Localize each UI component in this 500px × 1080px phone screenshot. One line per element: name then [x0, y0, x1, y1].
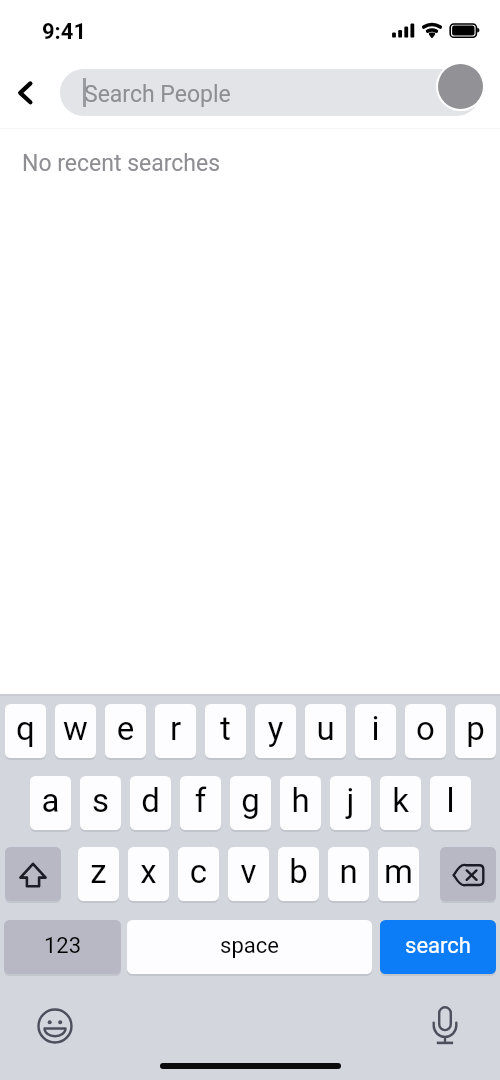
staticText: search — [380, 933, 496, 959]
staticText: No recent searches — [22, 150, 221, 177]
button[interactable]: i — [355, 704, 396, 758]
staticText: Search People — [84, 81, 231, 108]
button[interactable]: space — [127, 920, 372, 974]
button[interactable]: g — [230, 776, 271, 830]
button[interactable]: p — [455, 704, 496, 758]
button[interactable]: Back — [0, 70, 46, 116]
button[interactable]: y — [255, 704, 296, 758]
button[interactable]: n — [328, 847, 369, 901]
button[interactable]: Dictation — [423, 994, 475, 1046]
staticText: x — [128, 852, 169, 891]
staticText: f — [180, 781, 221, 820]
button[interactable]: a — [30, 776, 71, 830]
staticText: o — [405, 709, 446, 748]
button[interactable]: e — [105, 704, 146, 758]
staticText: n — [328, 852, 369, 891]
button[interactable]: x — [128, 847, 169, 901]
staticText: h — [280, 781, 321, 820]
staticText: t — [205, 709, 246, 748]
button[interactable]: u — [305, 704, 346, 758]
button[interactable]: m — [378, 847, 419, 901]
staticText: u — [305, 709, 346, 748]
button[interactable]: k — [380, 776, 421, 830]
button[interactable]: 123 — [4, 920, 121, 974]
button[interactable]: c — [178, 847, 219, 901]
button[interactable]: h — [280, 776, 321, 830]
button[interactable]: Shift — [5, 847, 61, 901]
staticText: g — [230, 781, 271, 820]
button[interactable]: l — [430, 776, 471, 830]
button[interactable]: Profile — [438, 64, 483, 109]
staticText: p — [455, 709, 496, 748]
button[interactable]: Delete — [440, 847, 496, 901]
staticText: d — [130, 781, 171, 820]
button[interactable]: Search People — [60, 69, 480, 116]
staticText: m — [378, 852, 419, 891]
staticText: s — [80, 781, 121, 820]
button[interactable]: z — [78, 847, 119, 901]
staticText: q — [5, 709, 46, 748]
staticText: r — [155, 709, 196, 748]
button[interactable]: o — [405, 704, 446, 758]
staticText: w — [55, 709, 96, 748]
staticText: b — [278, 852, 319, 891]
button[interactable]: q — [5, 704, 46, 758]
button[interactable]: w — [55, 704, 96, 758]
staticText: 9:41 — [42, 19, 87, 45]
button[interactable]: search — [380, 920, 496, 974]
staticText: v — [228, 852, 269, 891]
staticText: space — [127, 933, 372, 959]
staticText: y — [255, 709, 296, 748]
button[interactable]: r — [155, 704, 196, 758]
staticText: a — [30, 781, 71, 820]
staticText: z — [78, 852, 119, 891]
staticText: k — [380, 781, 421, 820]
button[interactable]: Emoji keyboard — [33, 1002, 77, 1046]
button[interactable]: b — [278, 847, 319, 901]
staticText: j — [330, 781, 371, 820]
staticText: c — [178, 852, 219, 891]
staticText: l — [430, 781, 471, 820]
staticText: i — [355, 709, 396, 748]
staticText: 123 — [4, 933, 121, 959]
button[interactable]: v — [228, 847, 269, 901]
button[interactable]: t — [205, 704, 246, 758]
button[interactable]: s — [80, 776, 121, 830]
button[interactable]: d — [130, 776, 171, 830]
staticText: e — [105, 709, 146, 748]
button[interactable]: j — [330, 776, 371, 830]
button[interactable]: f — [180, 776, 221, 830]
